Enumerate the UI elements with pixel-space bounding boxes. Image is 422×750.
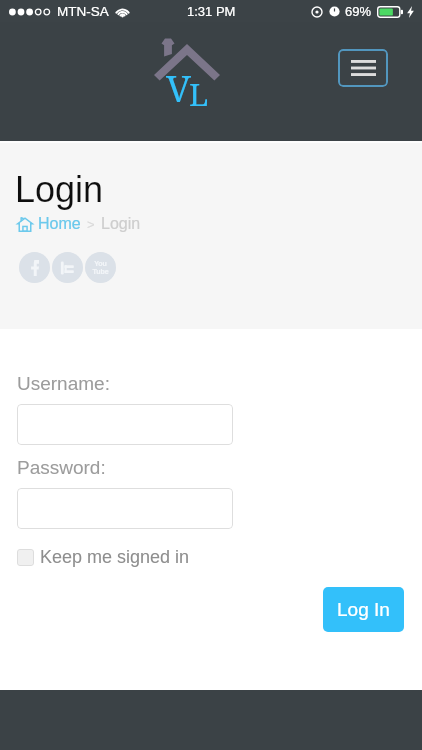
staticText: Login [15, 169, 104, 209]
staticText: Password: [17, 457, 106, 478]
button[interactable]: Keep me signed in [17, 547, 190, 567]
button[interactable]: Password [17, 488, 233, 529]
staticText: > [87, 217, 95, 232]
button[interactable]: Facebook [19, 252, 50, 283]
staticText: 69% [345, 4, 372, 19]
button[interactable]: Username [17, 404, 233, 445]
button[interactable]: Twitter [52, 252, 83, 283]
staticText: Username: [17, 373, 110, 394]
staticText: Keep me signed in [40, 547, 190, 567]
button[interactable]: YouTube [85, 252, 116, 283]
staticText: V [166, 62, 191, 112]
staticText: 1:31 PM [187, 4, 236, 19]
button[interactable]: Log In [323, 587, 404, 632]
staticText: Login [101, 215, 141, 233]
staticText: Home [38, 215, 81, 233]
button[interactable]: Menu [338, 49, 388, 87]
staticText: You Tube [92, 260, 109, 275]
staticText: L [189, 73, 209, 115]
staticText: MTN-SA [57, 4, 109, 19]
button[interactable]: Home [17, 215, 81, 233]
staticText: Log In [337, 599, 390, 620]
